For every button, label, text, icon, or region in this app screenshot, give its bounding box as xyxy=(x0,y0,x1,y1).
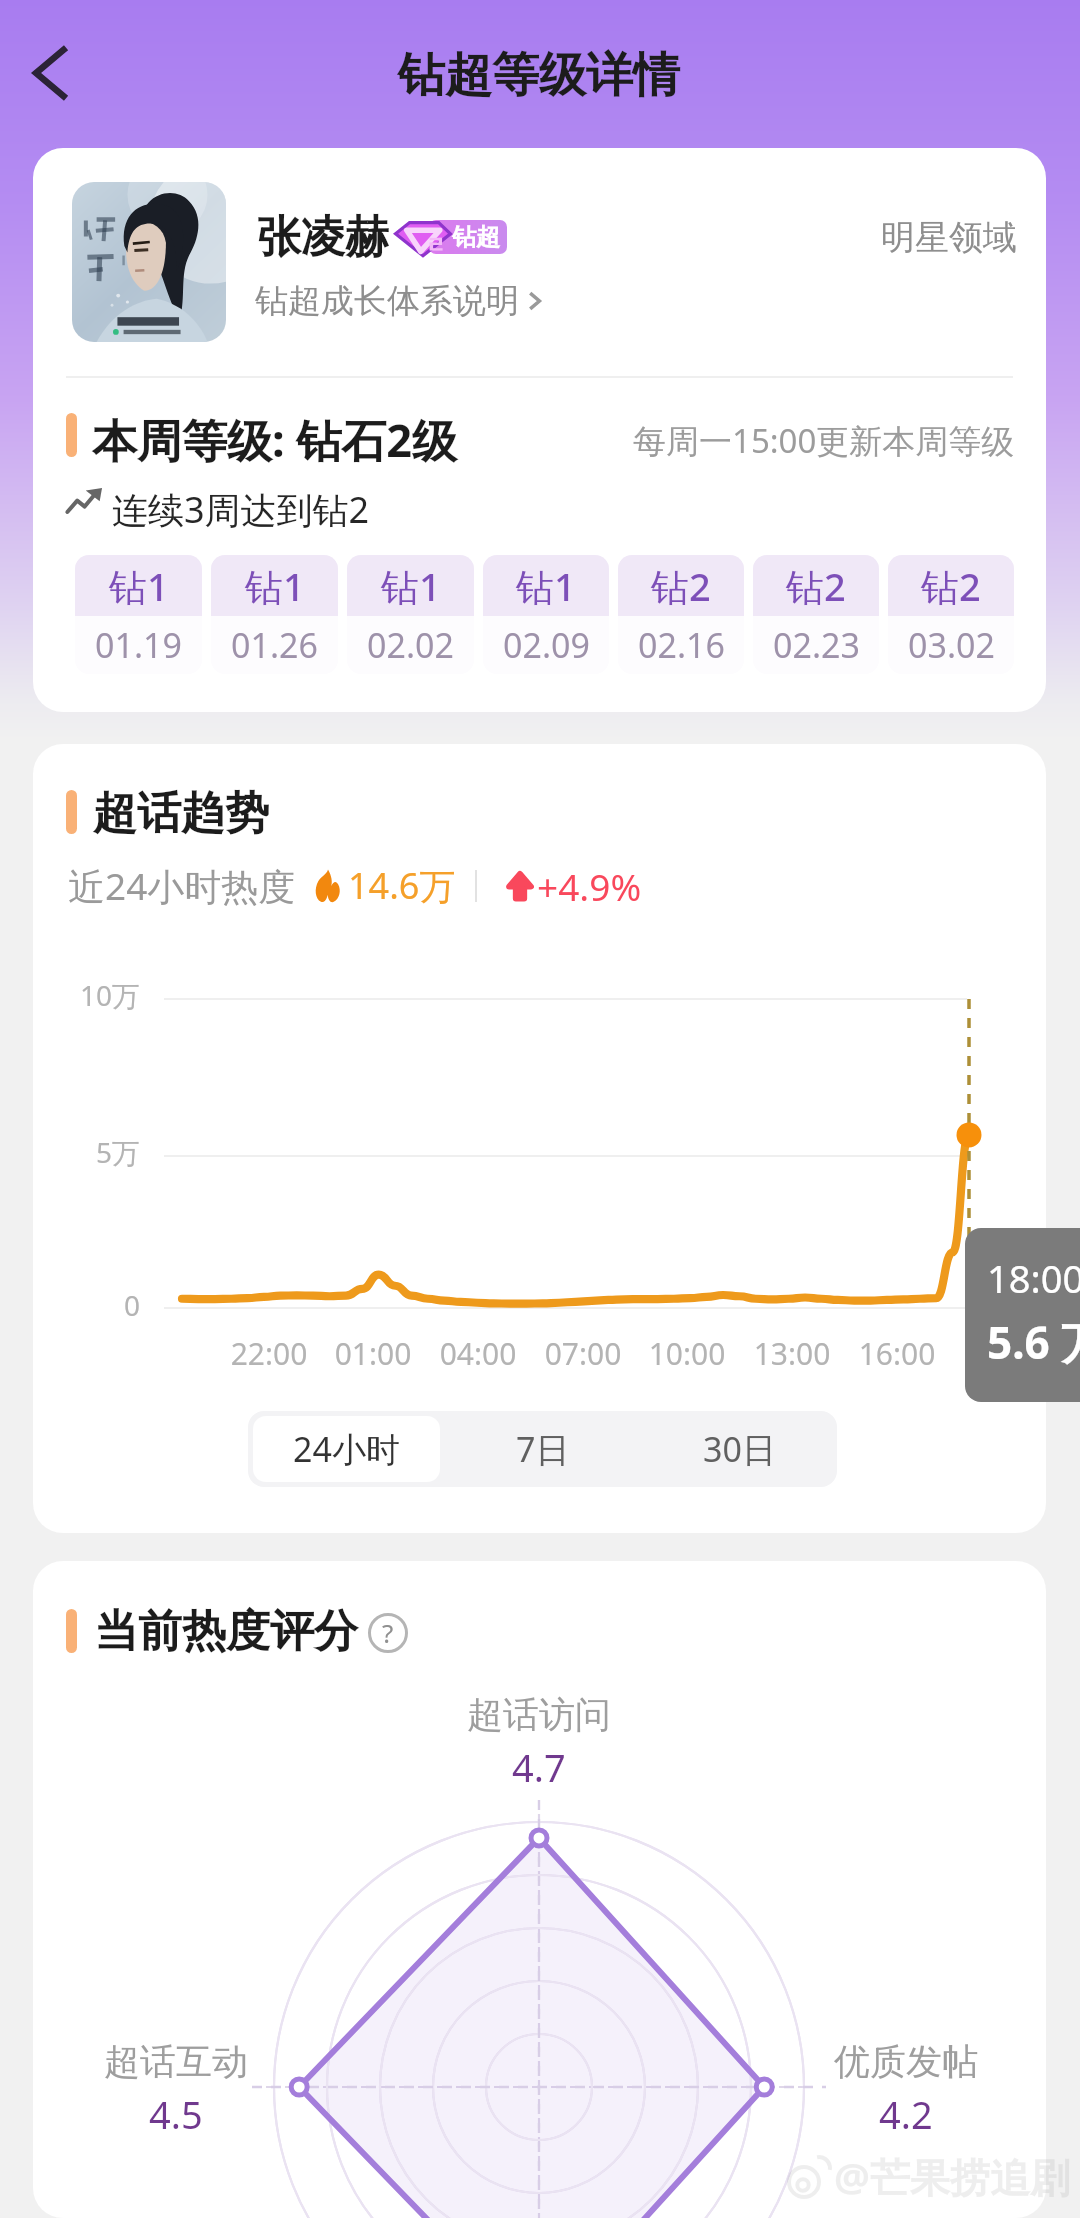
staticText: 18:00 xyxy=(987,1252,1080,1304)
staticText: 07:00 xyxy=(503,1333,663,1374)
staticText: 超话趋势 xyxy=(93,786,269,841)
staticText: 04:00 xyxy=(398,1333,558,1374)
staticText: 10万 xyxy=(33,976,140,1014)
staticText: 钻1 xyxy=(109,560,169,612)
staticText: @芒果捞追剧 xyxy=(834,2149,1070,2204)
button[interactable]: 钻2 xyxy=(888,555,1014,674)
staticText: 钻超成长体系说明 xyxy=(255,280,519,322)
staticText: 22:00 xyxy=(189,1333,349,1374)
staticText: 02.23 xyxy=(773,622,860,668)
staticText: 02.16 xyxy=(638,622,725,668)
staticText: 每周一15:00更新本周等级 xyxy=(633,418,1015,463)
staticText: +4.9% xyxy=(537,861,642,911)
button[interactable]: 钻2 xyxy=(618,555,744,674)
staticText: 02.09 xyxy=(503,622,590,668)
staticText: 02.02 xyxy=(367,622,454,668)
button[interactable]: 钻2 xyxy=(753,555,879,674)
staticText: 超话互动 xyxy=(104,2039,248,2084)
staticText: 03.02 xyxy=(908,622,995,668)
staticText: 0 xyxy=(33,1286,140,1324)
staticText: 近24小时热度 xyxy=(68,860,296,911)
staticText: 优质发帖 xyxy=(834,2039,978,2084)
button[interactable]: 明星领域 xyxy=(862,202,1028,268)
staticText: 30日 xyxy=(703,1426,776,1472)
staticText: 10:00 xyxy=(607,1333,767,1374)
staticText: 钻超 xyxy=(452,222,500,252)
staticText: 7日 xyxy=(516,1426,570,1472)
button[interactable]: 钻1 xyxy=(347,555,474,674)
button[interactable]: 30日 xyxy=(641,1411,837,1487)
staticText: 钻1 xyxy=(516,560,576,612)
staticText: 5万 xyxy=(33,1133,140,1171)
staticText: 钻2 xyxy=(786,560,846,612)
staticText: 连续3周达到钻2 xyxy=(112,485,370,534)
staticText: 超话访问 xyxy=(467,1692,611,1737)
staticText: 张凌赫 xyxy=(257,210,389,265)
staticText: 24小时 xyxy=(293,1426,400,1472)
button[interactable]: 钻1 xyxy=(483,555,609,674)
staticText: 钻2 xyxy=(921,560,981,612)
staticText: 13:00 xyxy=(712,1333,872,1374)
staticText: 钻1 xyxy=(245,560,305,612)
staticText: 4.7 xyxy=(512,1741,566,1793)
button[interactable]: 钻1 xyxy=(75,555,202,674)
button[interactable]: Help xyxy=(368,1613,408,1653)
button[interactable]: Back xyxy=(10,27,102,119)
staticText: 钻超等级详情 xyxy=(398,46,680,105)
staticText: 01.26 xyxy=(231,622,318,668)
staticText: 钻2 xyxy=(651,560,711,612)
staticText: ? xyxy=(382,1615,394,1650)
staticText: 4.2 xyxy=(879,2088,933,2140)
button[interactable]: 钻1 xyxy=(211,555,338,674)
staticText: 14.6万 xyxy=(348,861,456,910)
staticText: 01:00 xyxy=(293,1333,453,1374)
staticText: 16:00 xyxy=(817,1333,977,1374)
button[interactable]: 24小时 xyxy=(253,1416,440,1482)
button[interactable]: 钻超成长体系说明 xyxy=(255,280,545,322)
staticText: 明星领域 xyxy=(881,216,1017,259)
button[interactable]: Avatar xyxy=(72,182,226,342)
staticText: 4.5 xyxy=(149,2088,203,2140)
staticText: 钻1 xyxy=(381,560,441,612)
button[interactable]: 7日 xyxy=(445,1411,641,1487)
staticText: 01.19 xyxy=(95,622,182,668)
staticText: 5.6 万 xyxy=(987,1312,1080,1372)
staticText: 本周等级: 钻石2级 xyxy=(92,409,458,470)
staticText: 当前热度评分 xyxy=(94,1604,358,1659)
